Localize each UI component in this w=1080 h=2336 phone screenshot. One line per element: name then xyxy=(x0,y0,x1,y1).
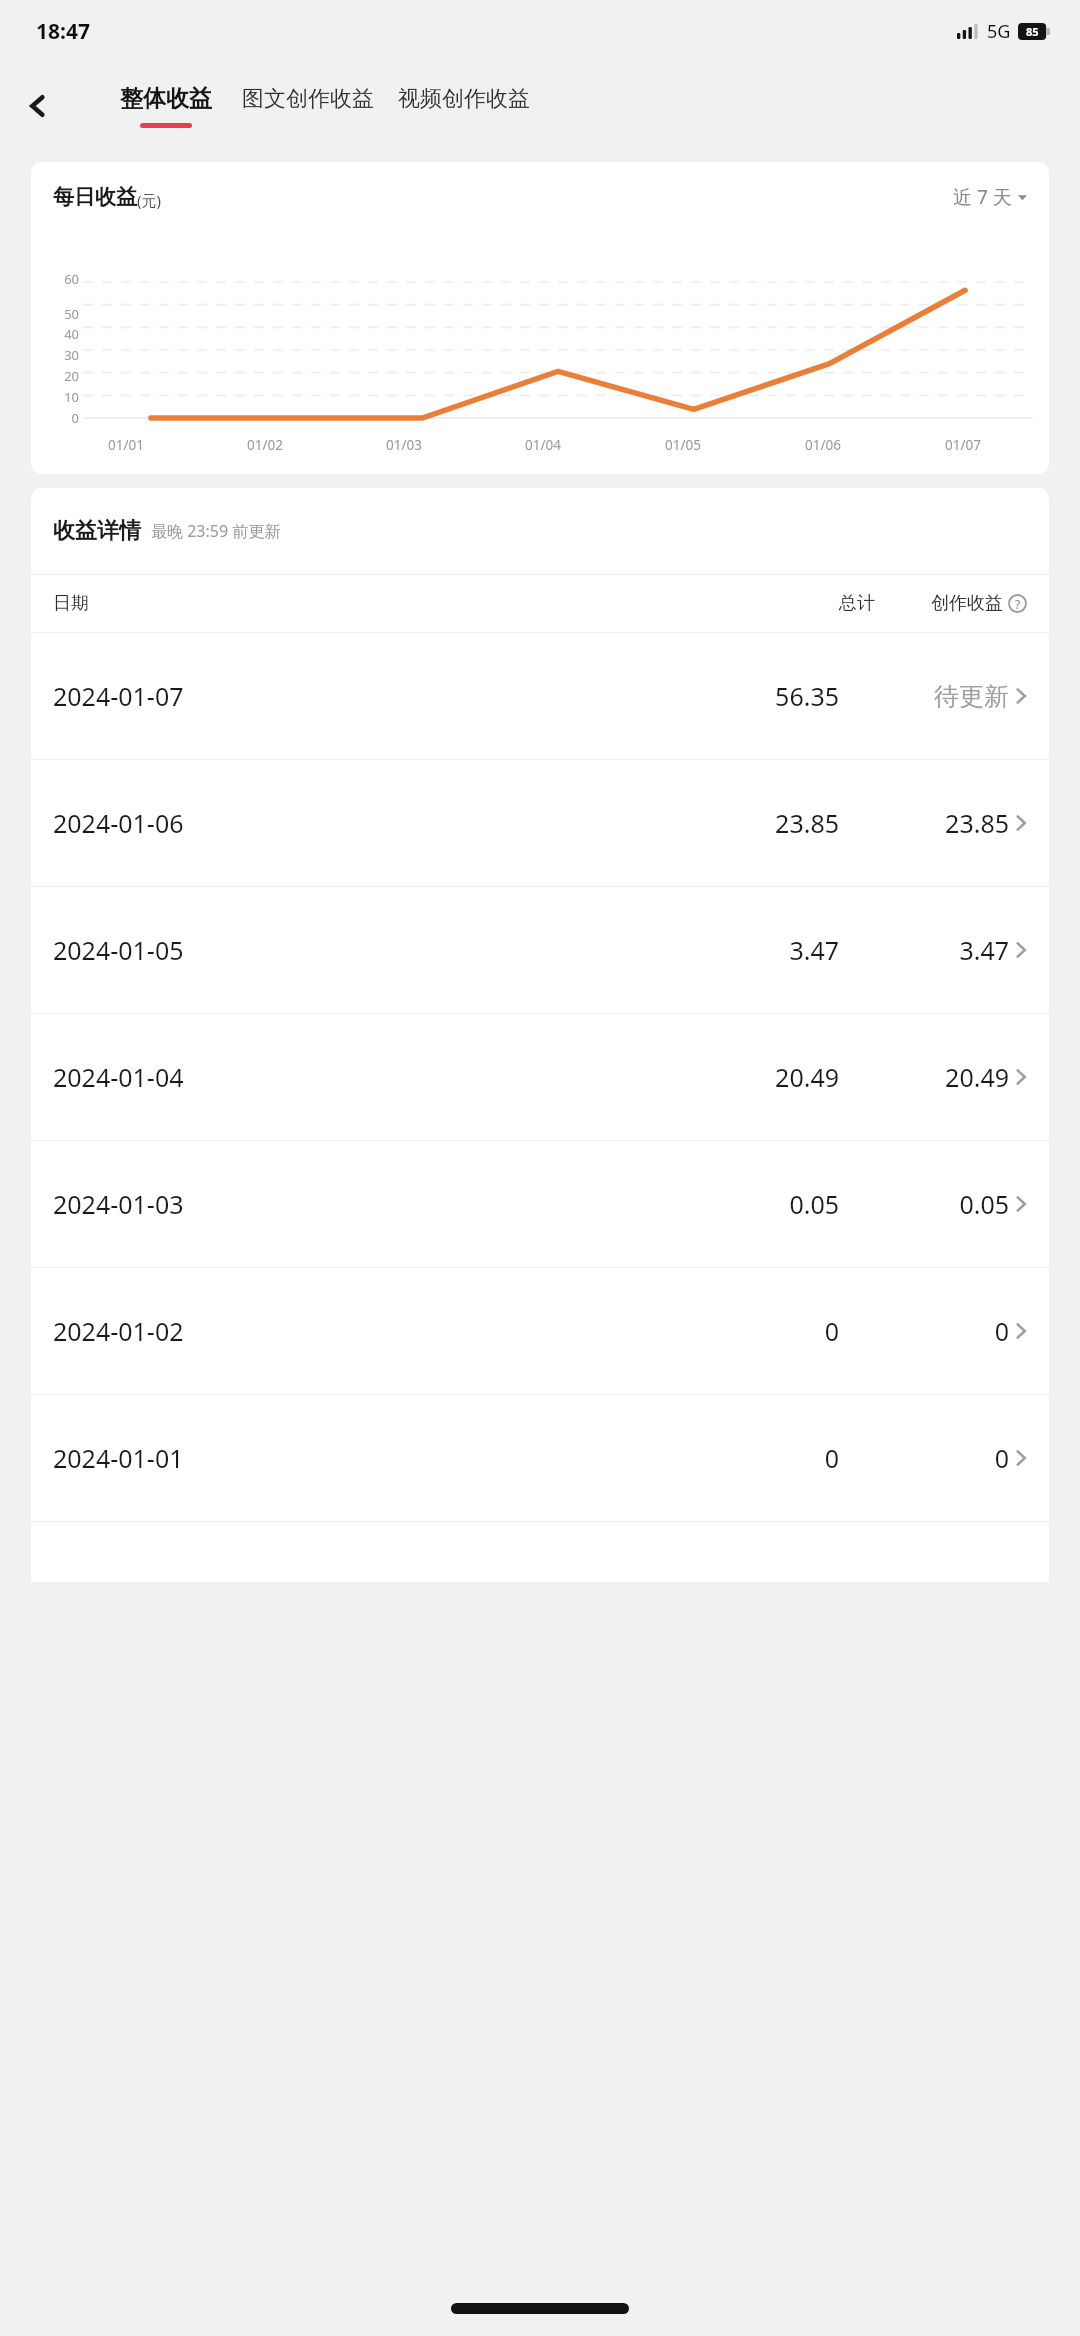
staticText: 收益详情 xyxy=(53,517,141,545)
staticText: 23.85 xyxy=(869,806,1009,840)
staticText: 01/01 xyxy=(108,436,144,454)
button[interactable]: Back xyxy=(10,78,66,134)
staticText: 01/06 xyxy=(805,436,841,454)
staticText: (元) xyxy=(137,190,162,210)
staticText: 2024-01-01 xyxy=(53,1441,719,1475)
staticText: 整体收益 xyxy=(120,84,212,113)
staticText: 20 xyxy=(64,367,79,385)
staticText: 2024-01-06 xyxy=(53,806,719,840)
staticText: 2024-01-02 xyxy=(53,1314,719,1348)
staticText: 2024-01-03 xyxy=(53,1187,719,1221)
staticText: 0 xyxy=(71,409,79,427)
staticText: 01/02 xyxy=(247,436,283,454)
staticText: 40 xyxy=(64,325,79,343)
button[interactable]: 近 7 天 xyxy=(953,184,1027,210)
button[interactable]: 2024-01-02 xyxy=(31,1268,1049,1394)
staticText: 最晚 23:59 前更新 xyxy=(151,520,281,542)
staticText: 20.49 xyxy=(869,1060,1009,1094)
staticText: 30 xyxy=(64,346,79,364)
staticText: 3.47 xyxy=(869,933,1009,967)
staticText: 85 xyxy=(1026,24,1039,39)
staticText: 图文创作收益 xyxy=(242,85,374,113)
staticText: 01/04 xyxy=(525,436,561,454)
button[interactable]: 2024-01-04 xyxy=(31,1014,1049,1140)
staticText: 总计 xyxy=(755,592,875,615)
staticText: 50 xyxy=(64,305,79,323)
staticText: 10 xyxy=(64,388,79,406)
staticText: 01/07 xyxy=(945,436,981,454)
staticText: 视频创作收益 xyxy=(398,85,530,113)
staticText: 18:47 xyxy=(36,17,90,46)
button[interactable]: Help xyxy=(1008,594,1027,613)
button[interactable]: 2024-01-06 xyxy=(31,760,1049,886)
staticText: 3.47 xyxy=(719,933,839,967)
staticText: 0 xyxy=(869,1314,1009,1348)
button[interactable]: 视频创作收益 xyxy=(396,81,532,132)
staticText: 23.85 xyxy=(719,806,839,840)
staticText: 01/03 xyxy=(386,436,422,454)
staticText: 待更新 xyxy=(869,681,1009,712)
staticText: 0.05 xyxy=(719,1187,839,1221)
staticText: 0 xyxy=(719,1441,839,1475)
staticText: 0.05 xyxy=(869,1187,1009,1221)
staticText: 01/05 xyxy=(665,436,701,454)
button[interactable]: 整体收益 xyxy=(118,80,214,132)
staticText: 2024-01-07 xyxy=(53,679,719,713)
staticText: 近 7 天 xyxy=(953,184,1012,210)
button[interactable]: 2024-01-05 xyxy=(31,887,1049,1013)
staticText: 2024-01-05 xyxy=(53,933,719,967)
staticText: 创作收益 xyxy=(931,592,1003,615)
button[interactable]: 2024-01-07 xyxy=(31,633,1049,759)
staticText: 0 xyxy=(869,1441,1009,1475)
button[interactable]: 图文创作收益 xyxy=(240,81,376,132)
staticText: 0 xyxy=(719,1314,839,1348)
staticText: 每日收益 xyxy=(53,184,137,210)
button[interactable]: 2024-01-01 xyxy=(31,1395,1049,1521)
staticText: 20.49 xyxy=(719,1060,839,1094)
button[interactable]: 2024-01-03 xyxy=(31,1141,1049,1267)
staticText: 5G xyxy=(987,19,1011,44)
staticText: 日期 xyxy=(53,592,755,615)
staticText: ? xyxy=(1015,596,1021,612)
staticText: 56.35 xyxy=(719,679,839,713)
staticText: 2024-01-04 xyxy=(53,1060,719,1094)
staticText: 60 xyxy=(64,270,79,288)
